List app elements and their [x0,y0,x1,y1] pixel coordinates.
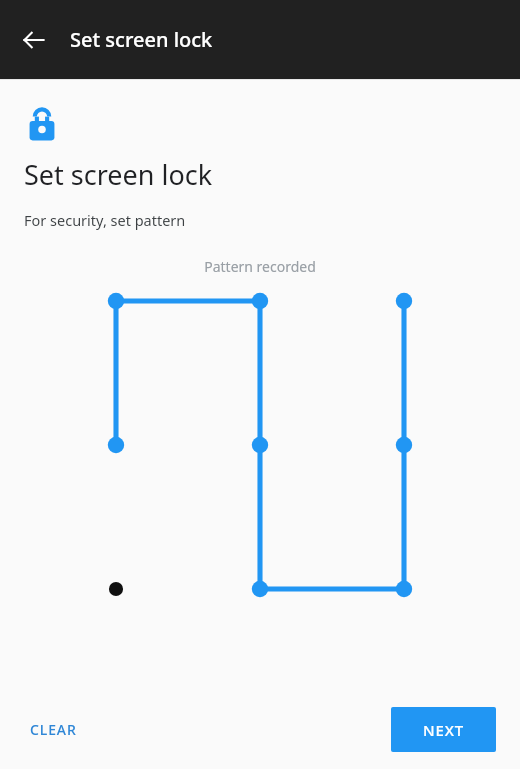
staticText: For security, set pattern [24,210,186,230]
button[interactable]: CLEAR [16,708,91,751]
staticText: Pattern recorded [204,257,316,276]
button[interactable]: Back [10,16,58,64]
staticText: Set screen lock [24,156,213,193]
button[interactable]: Unlock pattern [116,301,404,589]
staticText: Set screen lock [70,26,213,53]
button[interactable]: NEXT [391,707,496,752]
staticText: CLEAR [30,720,77,739]
staticText: NEXT [423,720,465,740]
